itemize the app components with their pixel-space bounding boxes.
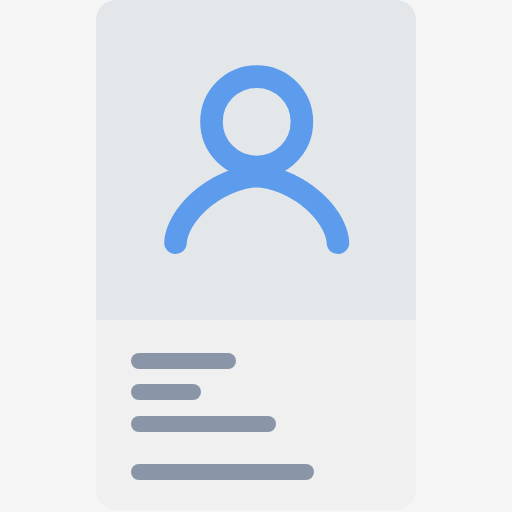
button[interactable]: Contact card [96,0,416,510]
